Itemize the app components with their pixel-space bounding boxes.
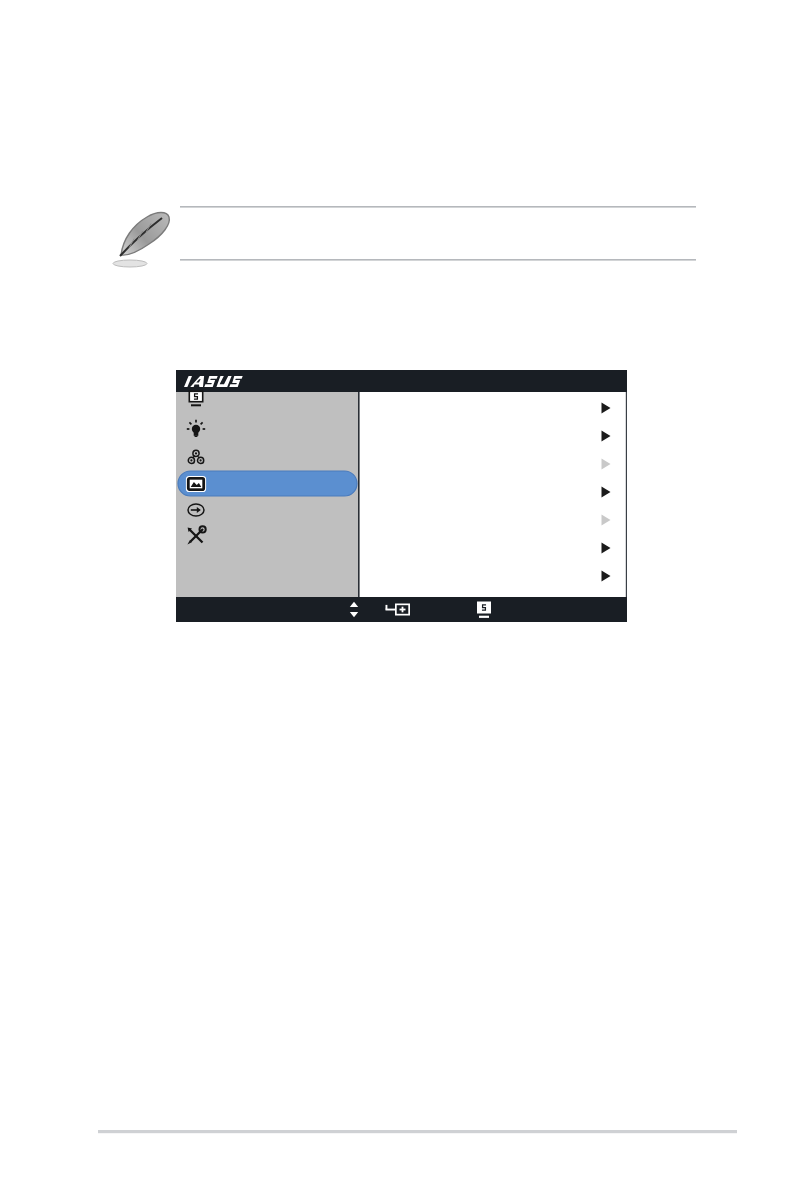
button[interactable]: System Setup — [178, 518, 358, 544]
button[interactable]: Exit / Splendid — [466, 598, 506, 622]
button[interactable]: Image — [178, 466, 358, 492]
button[interactable]: Input Select — [178, 496, 358, 522]
button[interactable]: Blue Light Filter — [178, 418, 358, 444]
button[interactable]: Splendid — [178, 386, 358, 412]
button[interactable]: Submenu item 1 — [362, 395, 624, 421]
button[interactable]: Submenu item 7 — [362, 563, 624, 589]
button[interactable]: Navigate up or down — [338, 598, 374, 622]
button[interactable]: Submenu item 4 — [362, 479, 624, 505]
button[interactable]: Color — [178, 443, 358, 469]
button[interactable]: Submenu item 5 — [362, 507, 624, 533]
button[interactable]: Enter / Input select — [382, 598, 426, 622]
button[interactable]: Submenu item 6 — [362, 535, 624, 561]
button[interactable]: Submenu item 3 — [362, 451, 624, 477]
button[interactable]: Submenu item 2 — [362, 423, 624, 449]
